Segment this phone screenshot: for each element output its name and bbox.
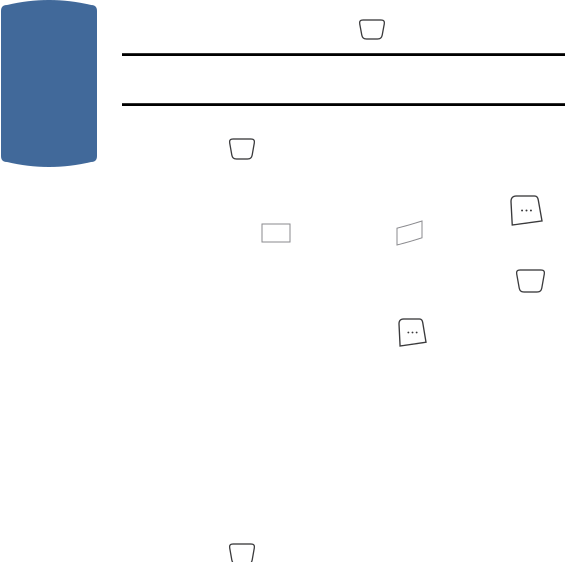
- button[interactable]: Chip four: [229, 544, 255, 562]
- button[interactable]: More options: [511, 196, 542, 225]
- button[interactable]: Chip three: [516, 270, 545, 292]
- button[interactable]: Chip two: [229, 139, 255, 159]
- button[interactable]: Chip one: [359, 20, 385, 39]
- button[interactable]: Cover: [1, 0, 97, 167]
- button[interactable]: More: [399, 319, 426, 346]
